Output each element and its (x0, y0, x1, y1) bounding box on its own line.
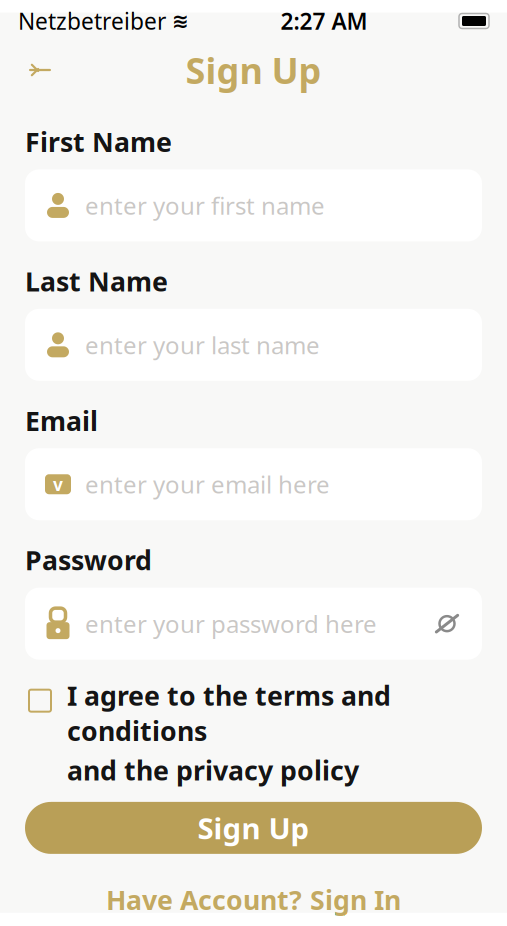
staticText: Netzbetreiber (18, 6, 166, 36)
staticText: Sign Up (197, 808, 309, 847)
staticText: Sign Up (185, 46, 321, 94)
staticText: I agree to the terms and conditions (67, 678, 391, 748)
button[interactable]: enter your first name (25, 169, 482, 241)
staticText: and the privacy policy (67, 752, 359, 788)
staticText: ≋ (172, 10, 189, 32)
staticText: Email (25, 403, 98, 438)
staticText: 2:27 AM (280, 6, 367, 36)
staticText: enter your last name (85, 329, 320, 361)
staticText: Sign In (310, 882, 401, 917)
staticText: v (53, 473, 63, 496)
staticText: enter your first name (85, 189, 325, 221)
staticText: enter your email here (85, 468, 330, 500)
staticText: First Name (25, 124, 172, 159)
button[interactable]: Back (18, 48, 62, 92)
button[interactable]: enter your last name (25, 309, 482, 381)
button[interactable]: I agree to the terms and conditions (25, 678, 482, 788)
button[interactable]: enter your password here (25, 588, 482, 660)
staticText: Password (25, 542, 152, 578)
button[interactable]: Sign Up (25, 802, 482, 854)
button[interactable]: Have Account? (25, 882, 482, 917)
button[interactable]: v (25, 448, 482, 520)
staticText: enter your password here (85, 608, 377, 640)
staticText: Last Name (25, 263, 168, 299)
staticText: Have Account? (106, 882, 302, 917)
